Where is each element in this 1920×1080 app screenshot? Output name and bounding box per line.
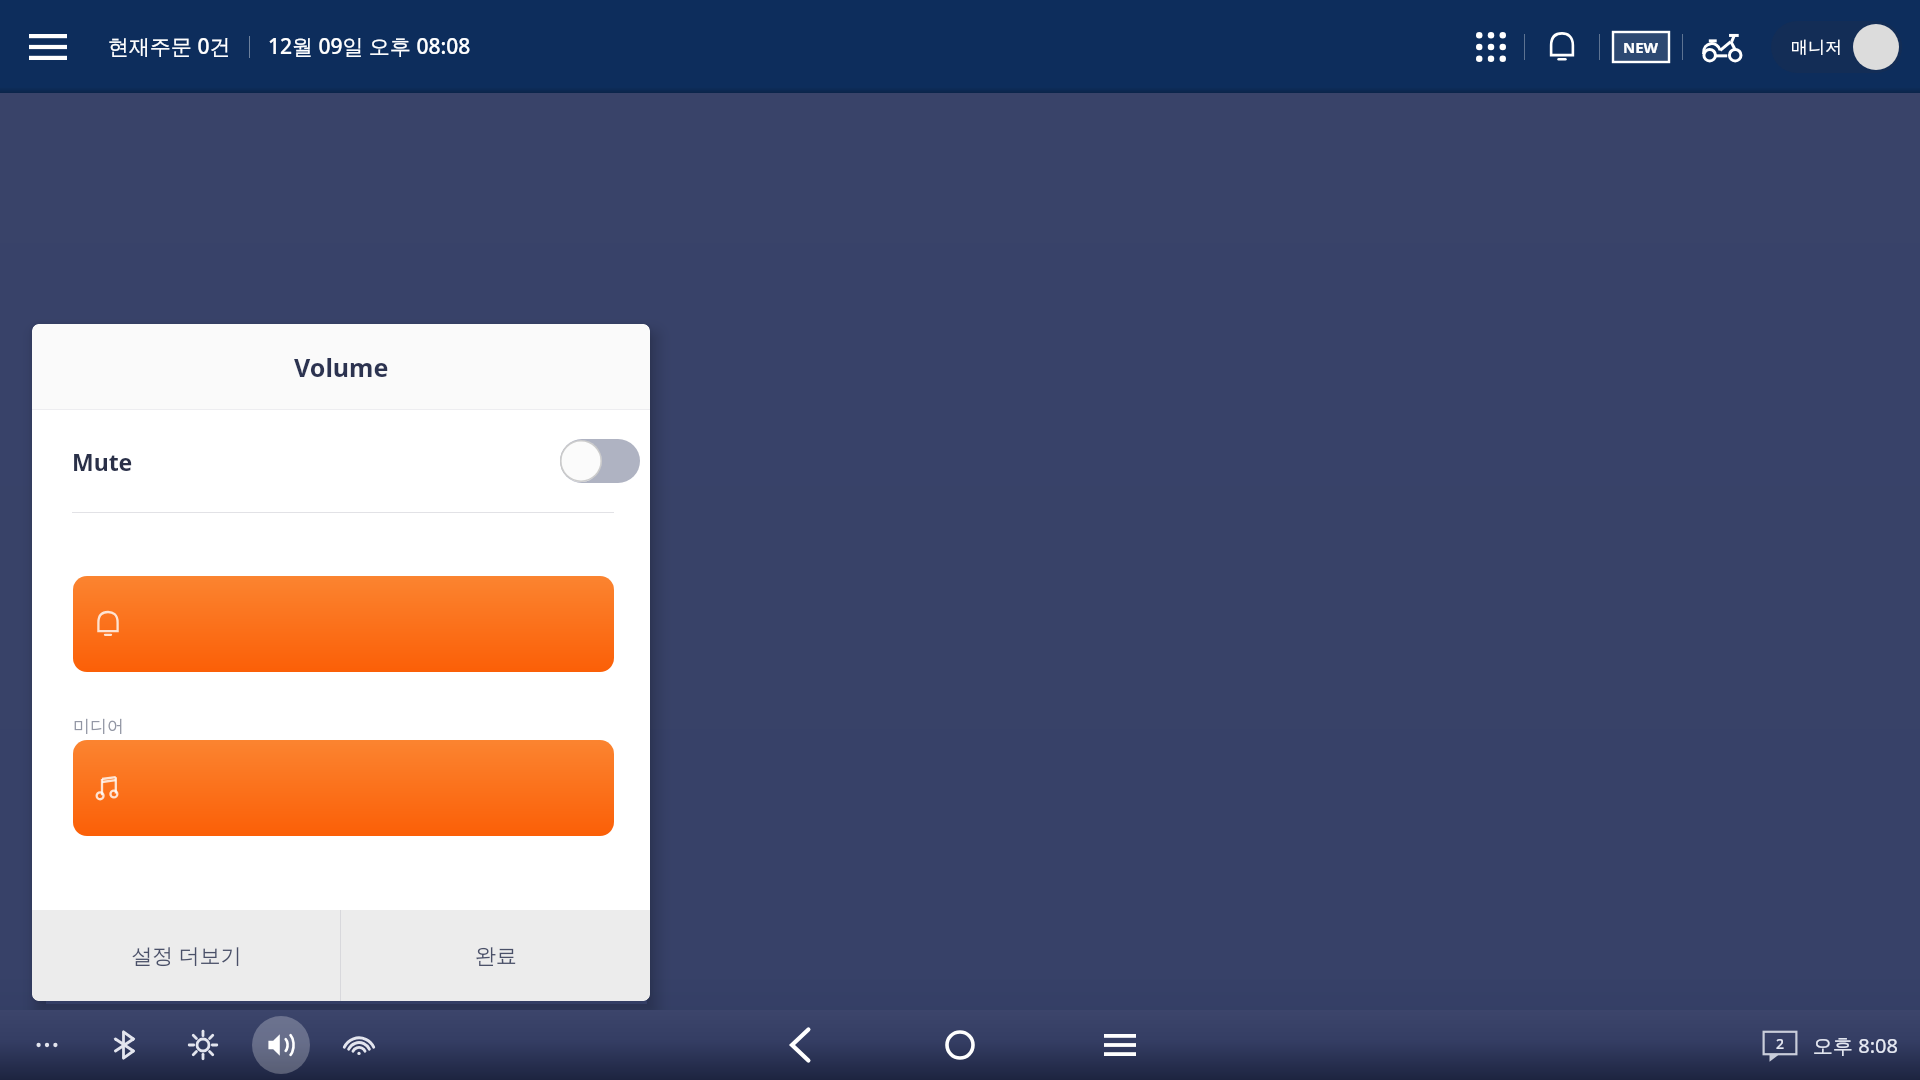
button[interactable]: Volume bbox=[252, 1016, 310, 1074]
button[interactable]: Bluetooth bbox=[96, 1016, 154, 1074]
button[interactable]: Back bbox=[765, 1010, 835, 1080]
staticText: Volume bbox=[294, 350, 389, 384]
button[interactable]: More options bbox=[18, 1016, 76, 1074]
button[interactable]: Apps bbox=[1462, 18, 1520, 76]
button[interactable]: New bbox=[1604, 21, 1678, 73]
button[interactable]: Mute bbox=[32, 410, 650, 512]
staticText: Mute bbox=[72, 446, 133, 477]
staticText: 2 bbox=[1776, 1034, 1785, 1053]
button[interactable]: Wi-Fi bbox=[330, 1016, 388, 1074]
button[interactable]: Mute toggle bbox=[560, 439, 640, 483]
button[interactable]: 매니저 bbox=[1771, 21, 1902, 73]
button[interactable]: Ringer volume bbox=[73, 576, 614, 672]
button[interactable]: Home bbox=[925, 1010, 995, 1080]
button[interactable]: 설정 더보기 bbox=[32, 910, 340, 1001]
button[interactable]: Media volume bbox=[73, 740, 614, 836]
button[interactable]: 2 notifications bbox=[1759, 1028, 1801, 1062]
staticText: 미디어 bbox=[73, 716, 124, 737]
button[interactable]: Brightness bbox=[174, 1016, 232, 1074]
button[interactable]: Recents bbox=[1085, 1010, 1155, 1080]
button[interactable]: Notifications bbox=[1529, 14, 1595, 80]
staticText: NEW bbox=[1623, 37, 1659, 57]
staticText: 매니저 bbox=[1791, 37, 1842, 58]
button[interactable]: Delivery bbox=[1687, 12, 1757, 82]
staticText: 완료 bbox=[475, 943, 517, 969]
staticText: 오후 8:08 bbox=[1813, 1032, 1898, 1059]
staticText: 현재주문 0건 bbox=[108, 32, 231, 61]
button[interactable]: Menu bbox=[20, 19, 76, 75]
staticText: 12월 09일 오후 08:08 bbox=[268, 32, 471, 61]
staticText: 설정 더보기 bbox=[131, 941, 242, 970]
button[interactable]: 완료 bbox=[341, 910, 650, 1001]
